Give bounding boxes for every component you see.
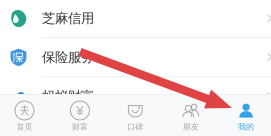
staticText: 朋友 <box>183 122 199 132</box>
button[interactable]: 财富 <box>52 94 108 136</box>
button[interactable]: 保险服务 <box>0 38 271 77</box>
staticText: 财富 <box>72 122 88 132</box>
button[interactable]: 芝麻信用 <box>0 0 271 38</box>
staticText: 我的 <box>238 122 254 132</box>
button[interactable]: 蚂蚁财富 <box>0 77 271 116</box>
staticText: 保险服务 <box>42 49 94 65</box>
staticText: 芝麻信用 <box>42 10 94 26</box>
staticText: 首页 <box>16 122 32 132</box>
button[interactable]: 朋友 <box>163 94 218 136</box>
staticText: 口碑 <box>127 122 143 132</box>
button[interactable]: 首页 <box>0 94 52 136</box>
button[interactable]: 口碑 <box>108 94 163 136</box>
button[interactable]: 我的 <box>218 94 271 136</box>
staticText: 蚂蚁财富 <box>42 88 94 104</box>
